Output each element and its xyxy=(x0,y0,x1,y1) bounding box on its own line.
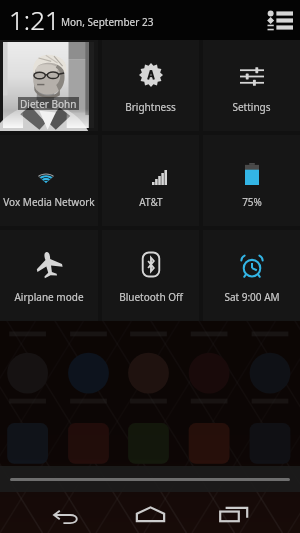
staticText: Airplane mode xyxy=(14,290,84,304)
button[interactable]: AT&T xyxy=(102,135,199,226)
staticText: 1:21 xyxy=(9,2,60,37)
staticText: Brightness xyxy=(125,100,176,114)
button[interactable]: Dieter Bohn xyxy=(3,42,94,128)
button[interactable]: Sat 9:00 AM xyxy=(203,230,300,321)
button[interactable]: Quick settings xyxy=(263,3,297,37)
button[interactable]: 75% xyxy=(203,135,300,226)
staticText: Sat 9:00 AM xyxy=(224,290,280,304)
button[interactable]: Brightness xyxy=(102,40,199,131)
staticText: Bluetooth Off xyxy=(119,290,183,304)
staticText: AT&T xyxy=(139,195,163,209)
button[interactable]: Vox Media Network xyxy=(0,135,98,226)
button[interactable]: Bluetooth Off xyxy=(102,230,199,321)
staticText: Dieter Bohn xyxy=(20,97,77,110)
staticText: Settings xyxy=(232,100,271,114)
staticText: 75% xyxy=(242,195,262,209)
staticText: Mon, September 23 xyxy=(61,15,154,29)
button[interactable]: Settings xyxy=(203,40,300,131)
button[interactable]: Recent apps xyxy=(204,492,264,533)
button[interactable]: Back xyxy=(36,492,96,533)
button[interactable]: Home xyxy=(120,492,180,533)
button[interactable]: Close quick settings xyxy=(0,466,300,492)
button[interactable]: Airplane mode xyxy=(0,230,98,321)
staticText: Vox Media Network xyxy=(3,195,95,209)
